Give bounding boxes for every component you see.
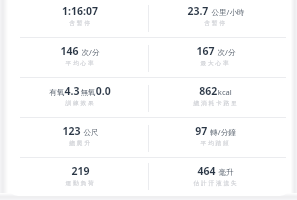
staticText: 估計汗液流失 xyxy=(193,180,239,187)
staticText: 123 公尺 xyxy=(62,124,99,138)
staticText: 219 xyxy=(71,164,90,178)
staticText: 464 毫升 xyxy=(197,164,234,178)
staticText: 總爬升 xyxy=(69,140,92,147)
staticText: 1:16:07 xyxy=(62,4,98,18)
staticText: 167 次/分 xyxy=(196,44,236,58)
staticText: 146 次/分 xyxy=(60,44,100,58)
staticText: 運動負荷 xyxy=(65,180,96,187)
button[interactable]: 862 kcal xyxy=(149,78,282,118)
staticText: 97 轉/分鐘 xyxy=(195,124,236,138)
staticText: 平均心率 xyxy=(65,60,96,67)
staticText: 23.7 公里/小時 xyxy=(187,4,245,18)
staticText: 平均踏頻 xyxy=(200,140,231,147)
button[interactable]: 23.7 公里/小時 xyxy=(149,0,282,38)
staticText: 有氧4.3 無氧0.0 xyxy=(49,84,111,98)
staticText: 862 kcal xyxy=(199,84,232,98)
button[interactable]: 97 轉/分鐘 xyxy=(149,118,282,158)
staticText: 含暫停 xyxy=(204,20,227,27)
button[interactable]: 167 次/分 xyxy=(149,38,282,78)
staticText: 含暫停 xyxy=(69,20,92,27)
button[interactable]: 123 公尺 xyxy=(12,118,148,158)
button[interactable]: 1:16:07 xyxy=(12,0,148,38)
staticText: 總消耗卡路里 xyxy=(193,100,239,107)
button[interactable]: 464 毫升 xyxy=(149,158,282,194)
button[interactable]: 146 次/分 xyxy=(12,38,148,78)
button[interactable]: 有氧4.3 無氧0.0 xyxy=(12,78,148,118)
staticText: 最大心率 xyxy=(200,60,231,67)
button[interactable]: 219 xyxy=(12,158,148,194)
staticText: 訓練效果 xyxy=(65,100,96,107)
